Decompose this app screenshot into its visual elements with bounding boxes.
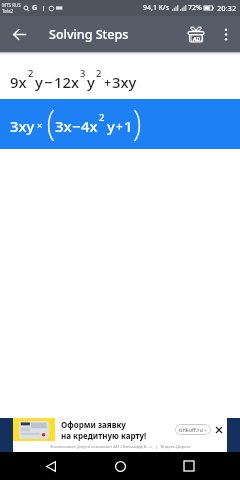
staticText: × [37, 119, 43, 131]
staticText: 94,1 K/s [143, 3, 169, 13]
button[interactable]: tinkoff.ru › [175, 424, 211, 435]
staticText: 2 [99, 111, 105, 124]
staticText: 12x [54, 72, 79, 92]
button[interactable]: Back [33, 452, 69, 480]
staticText: AD [193, 35, 201, 41]
staticText: 3 [80, 67, 86, 80]
staticText: + [116, 118, 123, 134]
button[interactable]: Recents [171, 452, 207, 480]
staticText: 9x [10, 72, 27, 92]
staticText: 1 [124, 116, 133, 136]
staticText: + [104, 74, 111, 91]
button[interactable]: Watch ad [179, 16, 212, 52]
staticText: Solving Steps [49, 26, 129, 43]
staticText: 3x [55, 116, 72, 136]
staticText: MTS RUS [2, 2, 21, 8]
staticText: y [35, 72, 43, 92]
staticText: y [87, 72, 95, 92]
button[interactable]: 3xy [0, 99, 240, 149]
button[interactable]: Back [0, 16, 38, 52]
staticText: Tele2 [2, 8, 13, 14]
button[interactable]: Home [102, 452, 138, 480]
button[interactable]: Оформи заявку [0, 418, 240, 452]
button[interactable]: More options [212, 16, 239, 52]
staticText: Оформи заявку [61, 419, 126, 430]
staticText: 4x [81, 116, 98, 136]
staticText: y [107, 116, 115, 136]
staticText: G [32, 3, 38, 13]
button[interactable]: Close ad [214, 425, 224, 435]
staticText: 2 [96, 67, 102, 80]
staticText: на кредитную карту! [61, 430, 147, 441]
staticText: 72% [188, 3, 202, 13]
staticText: 20:32 [217, 3, 237, 13]
staticText: tinkoff.ru › [179, 426, 207, 433]
staticText: − [72, 116, 81, 136]
staticText: 2 [28, 67, 34, 80]
staticText: Финансовые услуги оказывает АО «Тинькофф… [50, 444, 191, 450]
staticText: 3xy [10, 116, 35, 136]
staticText: − [44, 72, 53, 92]
staticText: 3xy [112, 72, 137, 92]
